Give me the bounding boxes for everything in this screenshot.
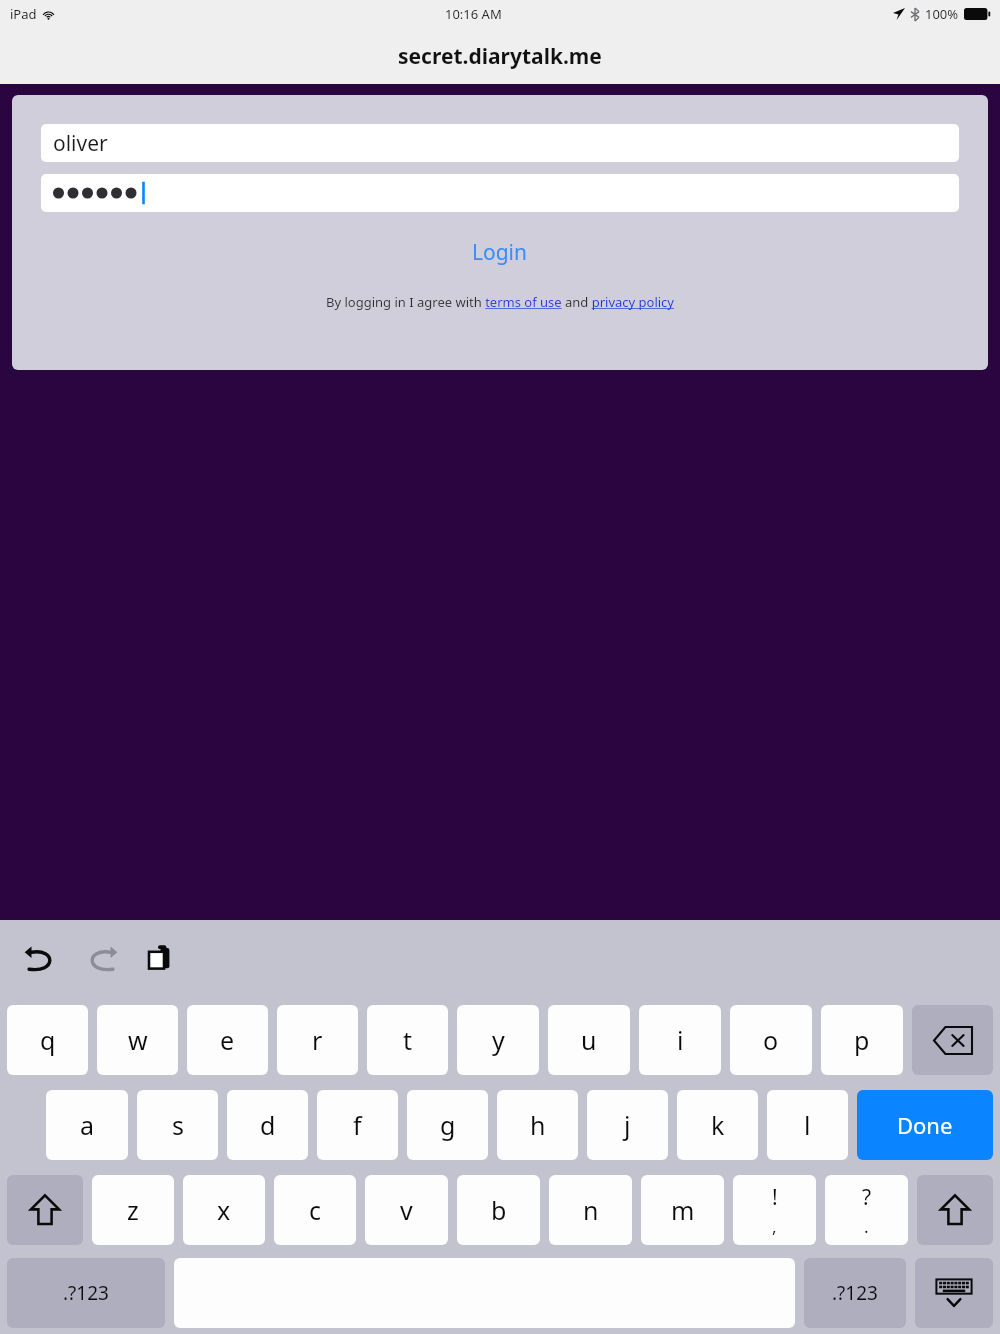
button[interactable]: d bbox=[227, 1090, 308, 1160]
staticText: e bbox=[220, 1023, 235, 1057]
button[interactable]: oliver bbox=[41, 124, 959, 162]
button[interactable]: e bbox=[187, 1005, 268, 1075]
staticText: 10:16 AM bbox=[445, 5, 502, 23]
button[interactable]: p bbox=[821, 1005, 903, 1075]
button[interactable]: q bbox=[7, 1005, 88, 1075]
button[interactable]: w bbox=[97, 1005, 178, 1075]
staticText: x bbox=[217, 1193, 231, 1227]
staticText: z bbox=[127, 1193, 139, 1227]
button[interactable]: .?123 bbox=[804, 1258, 906, 1328]
button[interactable]: b bbox=[457, 1175, 540, 1245]
staticText: g bbox=[440, 1108, 456, 1142]
staticText: u bbox=[581, 1023, 597, 1057]
staticText: f bbox=[353, 1108, 362, 1142]
staticText: o bbox=[763, 1023, 779, 1057]
staticText: b bbox=[491, 1193, 507, 1227]
button[interactable]: ! bbox=[733, 1175, 816, 1245]
button[interactable]: u bbox=[548, 1005, 630, 1075]
button[interactable]: Paste bbox=[138, 936, 184, 982]
button[interactable] bbox=[41, 174, 959, 212]
staticText: ? bbox=[862, 1183, 872, 1212]
staticText: v bbox=[400, 1193, 413, 1227]
staticText: iPad bbox=[10, 5, 37, 23]
button[interactable]: v bbox=[365, 1175, 448, 1245]
button[interactable]: m bbox=[641, 1175, 724, 1245]
button[interactable]: t bbox=[367, 1005, 448, 1075]
button[interactable]: r bbox=[277, 1005, 358, 1075]
staticText: Login bbox=[472, 238, 528, 267]
staticText: l bbox=[804, 1108, 811, 1142]
staticText: .?123 bbox=[63, 1280, 109, 1306]
button[interactable]: ? bbox=[825, 1175, 908, 1245]
button[interactable]: g bbox=[407, 1090, 488, 1160]
button[interactable]: o bbox=[730, 1005, 812, 1075]
staticText: k bbox=[711, 1108, 725, 1142]
staticText: j bbox=[624, 1108, 631, 1142]
staticText: 100% bbox=[925, 5, 959, 23]
button[interactable]: Undo bbox=[18, 936, 64, 982]
button[interactable]: i bbox=[639, 1005, 721, 1075]
staticText: h bbox=[530, 1108, 546, 1142]
button[interactable]: s bbox=[137, 1090, 218, 1160]
button[interactable]: Login bbox=[41, 238, 959, 267]
button[interactable]: Hide keyboard bbox=[915, 1258, 993, 1328]
button[interactable]: a bbox=[46, 1090, 128, 1160]
button[interactable]: f bbox=[317, 1090, 398, 1160]
button[interactable]: Backspace bbox=[912, 1005, 993, 1075]
staticText: t bbox=[403, 1023, 413, 1057]
button[interactable]: Shift bbox=[7, 1175, 83, 1245]
staticText: c bbox=[309, 1193, 322, 1227]
staticText: r bbox=[312, 1023, 323, 1057]
button[interactable]: y bbox=[457, 1005, 539, 1075]
staticText: d bbox=[260, 1108, 276, 1142]
staticText: n bbox=[583, 1193, 599, 1227]
button[interactable]: j bbox=[587, 1090, 668, 1160]
button[interactable]: n bbox=[549, 1175, 632, 1245]
staticText: . bbox=[864, 1215, 869, 1238]
button[interactable]: z bbox=[92, 1175, 174, 1245]
staticText: p bbox=[854, 1023, 870, 1057]
button[interactable]: h bbox=[497, 1090, 578, 1160]
button[interactable]: x bbox=[183, 1175, 265, 1245]
button[interactable]: l bbox=[767, 1090, 848, 1160]
staticText: By logging in I agree with terms of use … bbox=[326, 293, 674, 311]
button[interactable]: Redo bbox=[78, 936, 124, 982]
staticText: y bbox=[492, 1023, 505, 1057]
staticText: ! bbox=[772, 1183, 778, 1212]
button[interactable]: k bbox=[677, 1090, 758, 1160]
staticText: s bbox=[172, 1108, 184, 1142]
button[interactable]: .?123 bbox=[7, 1258, 165, 1328]
staticText: , bbox=[772, 1215, 777, 1238]
button[interactable]: c bbox=[274, 1175, 356, 1245]
staticText: i bbox=[677, 1023, 684, 1057]
staticText: Done bbox=[897, 1110, 953, 1140]
staticText: w bbox=[128, 1023, 148, 1057]
staticText: secret.diarytalk.me bbox=[398, 42, 602, 71]
button[interactable]: Shift bbox=[917, 1175, 993, 1245]
staticText: oliver bbox=[53, 129, 108, 158]
staticText: a bbox=[80, 1108, 95, 1142]
staticText: m bbox=[671, 1193, 695, 1227]
button[interactable]: Done bbox=[857, 1090, 993, 1160]
staticText: .?123 bbox=[832, 1280, 878, 1306]
staticText: q bbox=[40, 1023, 56, 1057]
